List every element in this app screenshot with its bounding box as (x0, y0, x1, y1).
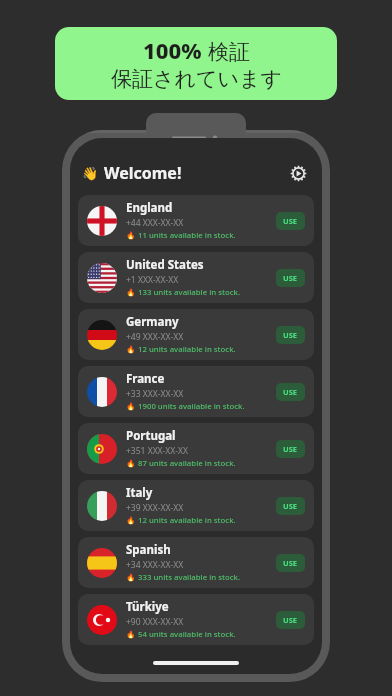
staticText: 🔥 (126, 573, 136, 582)
staticText: +33 XXX-XX-XX (126, 388, 184, 400)
staticText: England (126, 200, 173, 216)
staticText: 保証されています (111, 66, 282, 92)
button[interactable]: USE (276, 554, 305, 572)
staticText: 1900 units available in stock. (138, 401, 245, 412)
staticText: +34 XXX-XX-XX (126, 559, 184, 571)
button[interactable]: Spanish (78, 537, 314, 588)
staticText: +1 XXX-XX-XX (126, 274, 179, 286)
staticText: Germany (126, 314, 179, 330)
staticText: Welcome! (104, 162, 182, 184)
button[interactable]: Türkiye (78, 594, 314, 645)
staticText: Italy (126, 485, 153, 501)
staticText: 🔥 (126, 402, 136, 411)
staticText: France (126, 371, 165, 387)
button[interactable]: Germany (78, 309, 314, 360)
staticText: 🔥 (126, 459, 136, 468)
staticText: Türkiye (126, 599, 169, 615)
staticText: 333 units available in stock. (138, 572, 241, 583)
staticText: Spanish (126, 542, 171, 558)
staticText: 👋 (82, 166, 99, 181)
button[interactable]: Italy (78, 480, 314, 531)
staticText: 11 units available in stock. (138, 230, 236, 241)
staticText: 12 units available in stock. (138, 515, 236, 526)
staticText: +90 XXX-XX-XX (126, 616, 184, 628)
button[interactable]: USE (276, 212, 305, 230)
button[interactable]: Settings (286, 161, 310, 185)
button[interactable]: France (78, 366, 314, 417)
staticText: 100% (143, 35, 202, 65)
button[interactable]: USE (276, 326, 305, 344)
staticText: USE (283, 558, 298, 568)
staticText: 🔥 (126, 516, 136, 525)
button[interactable]: USE (276, 383, 305, 401)
staticText: +44 XXX-XX-XX (126, 217, 184, 229)
staticText: USE (283, 387, 298, 397)
staticText: USE (283, 501, 298, 511)
button[interactable]: England (78, 195, 314, 246)
staticText: +39 XXX-XX-XX (126, 502, 184, 514)
staticText: 12 units available in stock. (138, 344, 236, 355)
staticText: 🔥 (126, 345, 136, 354)
button[interactable]: Portugal (78, 423, 314, 474)
staticText: 54 units available in stock. (138, 629, 236, 640)
button[interactable]: 100% (55, 27, 337, 100)
staticText: USE (283, 615, 298, 625)
button[interactable]: USE (276, 497, 305, 515)
button[interactable]: USE (276, 440, 305, 458)
staticText: USE (283, 273, 298, 283)
button[interactable]: United States (78, 252, 314, 303)
staticText: 🔥 (126, 288, 136, 297)
button[interactable]: USE (276, 611, 305, 629)
staticText: USE (283, 330, 298, 340)
staticText: 🔥 (126, 630, 136, 639)
staticText: +49 XXX-XX-XX (126, 331, 184, 343)
staticText: 🔥 (126, 231, 136, 240)
staticText: 133 units available in stock. (138, 287, 241, 298)
staticText: 検証 (208, 39, 250, 65)
staticText: USE (283, 216, 298, 226)
staticText: +351 XXX-XX-XX (126, 445, 188, 457)
staticText: United States (126, 257, 204, 273)
staticText: Portugal (126, 428, 176, 444)
staticText: 87 units available in stock. (138, 458, 236, 469)
button[interactable]: USE (276, 269, 305, 287)
staticText: USE (283, 444, 298, 454)
